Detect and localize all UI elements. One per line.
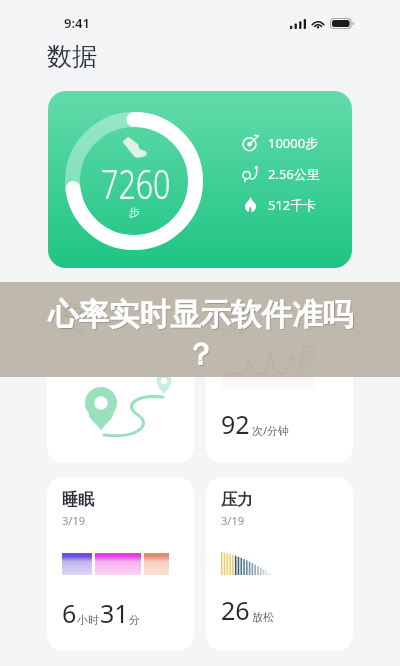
- staticText: 次/分钟: [252, 423, 290, 438]
- staticText: 运动: [62, 301, 94, 321]
- staticText: 3/19: [62, 324, 85, 339]
- staticText: 压力: [221, 490, 253, 510]
- staticText: 放松: [252, 610, 274, 624]
- staticText: ？: [186, 337, 217, 375]
- staticText: 3/19: [221, 324, 244, 339]
- staticText: 512千卡: [268, 196, 317, 213]
- button[interactable]: 压力: [206, 477, 353, 651]
- staticText: 数据: [47, 41, 97, 72]
- staticText: 心率: [221, 301, 253, 321]
- button[interactable]: 睡眠: [47, 477, 194, 651]
- staticText: 3/19: [221, 513, 244, 528]
- staticText: 心率实时显示软件准吗: [48, 296, 353, 334]
- button[interactable]: 心率: [206, 288, 353, 463]
- button[interactable]: 运动: [47, 288, 194, 463]
- staticText: 9:41: [64, 14, 90, 32]
- staticText: 分: [129, 613, 140, 627]
- staticText: 睡眠: [62, 490, 94, 510]
- staticText: 2.56公里: [268, 165, 320, 182]
- staticText: ？: [185, 336, 216, 374]
- button[interactable]: 7260: [48, 91, 352, 268]
- staticText: 92: [221, 407, 250, 441]
- staticText: 步: [129, 205, 140, 219]
- staticText: 6: [62, 596, 77, 630]
- staticText: 26: [221, 593, 250, 627]
- staticText: 7260: [101, 156, 171, 210]
- staticText: 小时: [77, 613, 99, 627]
- staticText: 3/19: [62, 513, 85, 528]
- staticText: 心率实时显示软件准吗: [49, 297, 354, 335]
- staticText: 31: [100, 596, 129, 630]
- staticText: 10000步: [268, 134, 319, 151]
